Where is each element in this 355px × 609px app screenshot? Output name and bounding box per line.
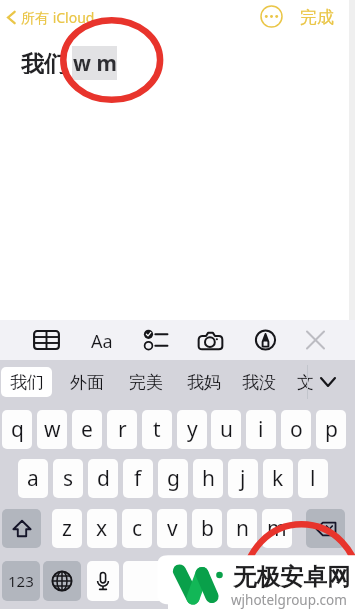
- staticText: wjhotelgroup.com: [231, 591, 347, 609]
- staticText: 123: [8, 571, 34, 591]
- staticText: h: [202, 464, 215, 493]
- staticText: v: [167, 514, 178, 543]
- button[interactable]: k: [263, 459, 293, 498]
- button[interactable]: Switch keyboard: [43, 561, 81, 601]
- button[interactable]: 我妈: [178, 367, 229, 397]
- button[interactable]: 文: [292, 367, 318, 397]
- button[interactable]: Camera: [197, 322, 223, 358]
- staticText: r: [118, 415, 127, 444]
- button[interactable]: 完成: [296, 3, 338, 32]
- button[interactable]: 完美: [120, 367, 171, 397]
- button[interactable]: p: [316, 410, 346, 449]
- staticText: 我们: [21, 50, 67, 74]
- staticText: z: [62, 514, 72, 543]
- button[interactable]: Space: [123, 561, 345, 601]
- staticText: 外面: [70, 372, 104, 393]
- button[interactable]: Backspace: [306, 509, 345, 548]
- button[interactable]: l: [298, 459, 328, 498]
- button[interactable]: f: [123, 459, 153, 498]
- button[interactable]: i: [246, 410, 276, 449]
- staticText: m: [267, 514, 287, 543]
- button[interactable]: 外面: [61, 367, 112, 397]
- button[interactable]: Markup: [252, 322, 278, 358]
- button[interactable]: h: [193, 459, 223, 498]
- button[interactable]: 我没: [233, 367, 284, 397]
- button[interactable]: Dictate: [87, 561, 119, 601]
- staticText: w: [44, 415, 61, 444]
- staticText: o: [290, 415, 303, 444]
- staticText: 完成: [300, 7, 334, 28]
- staticText: g: [167, 464, 180, 493]
- staticText: s: [63, 464, 74, 493]
- staticText: j: [240, 464, 246, 493]
- button[interactable]: More options: [260, 5, 283, 28]
- button[interactable]: g: [158, 459, 188, 498]
- staticText: d: [97, 464, 110, 493]
- button[interactable]: Text formatting: [86, 325, 117, 357]
- staticText: a: [27, 464, 39, 493]
- button[interactable]: 所有 iCloud: [4, 5, 98, 30]
- staticText: l: [310, 464, 316, 493]
- staticText: x: [96, 514, 108, 543]
- staticText: t: [153, 415, 161, 444]
- staticText: 我们: [10, 372, 44, 393]
- staticText: p: [325, 415, 338, 444]
- button[interactable]: Shift: [2, 509, 41, 548]
- staticText: 文: [297, 372, 314, 393]
- staticText: Aa: [91, 329, 113, 354]
- staticText: 我妈: [187, 372, 221, 393]
- staticText: u: [220, 415, 233, 444]
- button[interactable]: r: [107, 410, 137, 449]
- staticText: i: [258, 415, 264, 444]
- button[interactable]: t: [142, 410, 172, 449]
- button[interactable]: x: [87, 509, 117, 548]
- button[interactable]: u: [211, 410, 241, 449]
- staticText: e: [81, 415, 93, 444]
- button[interactable]: y: [177, 410, 207, 449]
- button[interactable]: q: [2, 410, 32, 449]
- button[interactable]: b: [192, 509, 222, 548]
- button[interactable]: Close keyboard: [302, 322, 328, 358]
- staticText: y: [187, 415, 198, 444]
- staticText: 所有 iCloud: [21, 8, 95, 27]
- staticText: k: [272, 464, 284, 493]
- button[interactable]: c: [122, 509, 152, 548]
- button[interactable]: e: [72, 410, 102, 449]
- staticText: 完美: [129, 372, 163, 393]
- button[interactable]: z: [52, 509, 82, 548]
- button[interactable]: Insert table: [33, 322, 59, 358]
- button[interactable]: Numbers: [2, 561, 40, 601]
- button[interactable]: j: [228, 459, 258, 498]
- button[interactable]: [1, 367, 52, 397]
- button[interactable]: s: [53, 459, 83, 498]
- button[interactable]: w: [37, 410, 67, 449]
- button[interactable]: Checklist: [144, 322, 170, 358]
- staticText: n: [236, 514, 249, 543]
- button[interactable]: o: [281, 410, 311, 449]
- button[interactable]: v: [157, 509, 187, 548]
- staticText: c: [132, 514, 143, 543]
- staticText: b: [201, 514, 214, 543]
- button[interactable]: m: [262, 509, 292, 548]
- staticText: f: [134, 464, 142, 493]
- button[interactable]: n: [227, 509, 257, 548]
- button[interactable]: More suggestions: [314, 367, 342, 397]
- staticText: w m: [73, 49, 117, 78]
- staticText: 无极安卓网: [233, 562, 351, 592]
- staticText: q: [11, 415, 24, 444]
- button[interactable]: d: [88, 459, 118, 498]
- staticText: 我没: [242, 372, 276, 393]
- button[interactable]: a: [18, 459, 48, 498]
